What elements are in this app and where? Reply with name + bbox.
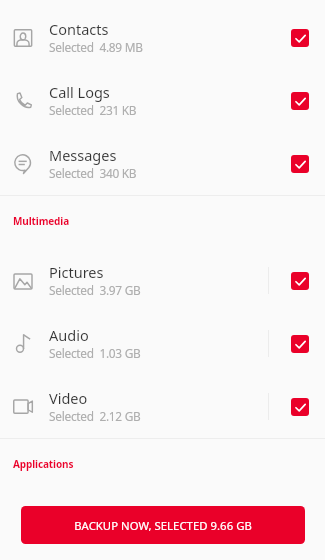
- button[interactable]: Contacts: [0, 6, 325, 69]
- staticText: Audio: [49, 325, 89, 345]
- staticText: Contacts: [49, 19, 109, 39]
- button[interactable]: Toggle Pictures: [269, 249, 309, 312]
- staticText: Call Logs: [49, 82, 110, 102]
- button[interactable]: Toggle Contacts: [269, 6, 309, 69]
- button[interactable]: Audio: [0, 312, 325, 375]
- staticText: Applications: [13, 457, 74, 471]
- staticText: Messages: [49, 145, 117, 165]
- staticText: Selected 4.89 MB: [49, 39, 143, 55]
- staticText: Multimedia: [13, 214, 70, 228]
- button[interactable]: Video: [0, 375, 325, 438]
- staticText: Video: [49, 388, 88, 408]
- button[interactable]: BACKUP NOW, SELECTED 9.66 GB: [21, 506, 305, 544]
- staticText: Selected 3.97 GB: [49, 282, 141, 298]
- button[interactable]: Call Logs: [0, 69, 325, 132]
- staticText: Selected 231 KB: [49, 102, 137, 118]
- staticText: BACKUP NOW, SELECTED 9.66 GB: [74, 518, 252, 533]
- button[interactable]: Pictures: [0, 249, 325, 312]
- button[interactable]: Toggle Messages: [269, 132, 309, 195]
- staticText: Pictures: [49, 262, 104, 282]
- button[interactable]: Toggle Call Logs: [269, 69, 309, 132]
- staticText: Selected 1.03 GB: [49, 345, 141, 361]
- staticText: Selected 340 KB: [49, 165, 137, 181]
- button[interactable]: Messages: [0, 132, 325, 195]
- button[interactable]: Toggle Audio: [269, 312, 309, 375]
- staticText: Selected 2.12 GB: [49, 408, 141, 424]
- button[interactable]: Toggle Video: [269, 375, 309, 438]
